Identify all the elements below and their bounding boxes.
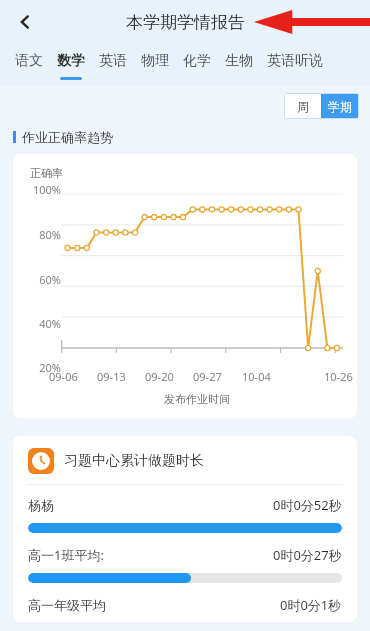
staticText: 本学期学情报告 — [126, 12, 245, 33]
staticText: 化学 — [183, 52, 211, 70]
staticText: 10-04 — [242, 369, 271, 384]
staticText: 学期 — [328, 99, 352, 114]
staticText: 20% — [39, 360, 61, 375]
button[interactable]: 正确率 — [13, 154, 357, 418]
staticText: 高一年级平均 — [28, 597, 106, 613]
staticText: 生物 — [225, 52, 253, 70]
staticText: 语文 — [15, 52, 43, 70]
staticText: 物理 — [141, 52, 169, 70]
button[interactable]: 生物 — [225, 44, 253, 77]
staticText: 09-27 — [193, 369, 222, 384]
staticText: 数学 — [57, 52, 85, 70]
staticText: 正确率 — [30, 166, 63, 180]
staticText: 60% — [39, 272, 61, 287]
staticText: 09-20 — [145, 369, 174, 384]
button[interactable]: 英语 — [99, 44, 127, 77]
button[interactable]: 化学 — [183, 44, 211, 77]
staticText: 英语听说 — [267, 52, 323, 70]
staticText: 习题中心累计做题时长 — [64, 452, 204, 470]
staticText: 英语 — [99, 52, 127, 70]
button[interactable]: 数学 — [57, 44, 85, 80]
staticText: 0时0分1秒 — [280, 596, 342, 614]
staticText: 80% — [39, 227, 61, 242]
staticText: 高一1班平均: — [28, 546, 104, 564]
staticText: 100% — [32, 182, 61, 197]
staticText: 作业正确率趋势 — [22, 129, 113, 145]
staticText: 09-13 — [97, 369, 126, 384]
button[interactable]: 语文 — [15, 44, 43, 77]
staticText: 09-06 — [49, 369, 78, 384]
button[interactable]: 英语听说 — [267, 44, 323, 77]
button[interactable]: 学期 — [321, 94, 358, 118]
button[interactable]: Back — [6, 3, 44, 41]
staticText: 0时0分27秒 — [273, 546, 342, 564]
button[interactable]: 习题中心累计做题时长 — [13, 436, 357, 622]
staticText: 0时0分52秒 — [273, 496, 342, 514]
staticText: 周 — [297, 99, 309, 114]
staticText: 40% — [39, 316, 61, 331]
button[interactable]: 周 — [285, 94, 321, 118]
staticText: 杨杨 — [28, 497, 54, 513]
button[interactable]: 物理 — [141, 44, 169, 77]
staticText: 发布作业时间 — [164, 392, 230, 406]
staticText: 10-26 — [324, 369, 353, 384]
